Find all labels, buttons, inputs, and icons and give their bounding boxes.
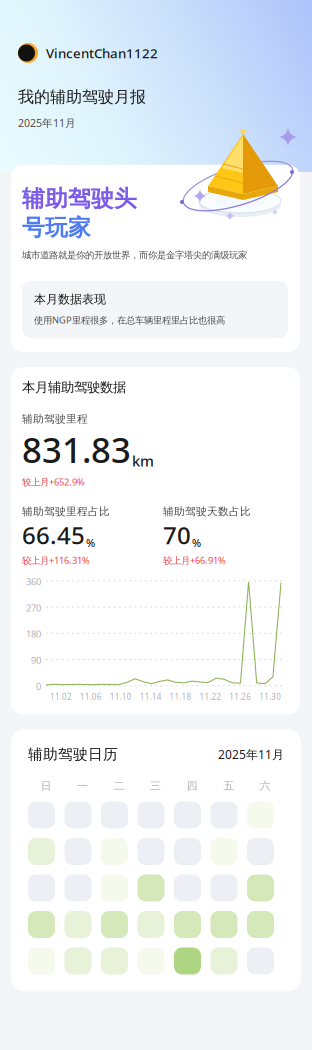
staticText: 较上月+116.31% bbox=[22, 554, 90, 566]
staticText: 辅助驾驶里程 bbox=[22, 412, 88, 426]
staticText: 66.45 bbox=[22, 519, 85, 551]
staticText: 较上月+652.9% bbox=[22, 476, 85, 488]
staticText: 2025年11月 bbox=[18, 116, 76, 130]
staticText: 11.30 bbox=[259, 691, 281, 702]
staticText: 360 bbox=[26, 575, 41, 588]
staticText: 270 bbox=[26, 602, 41, 614]
staticText: 本月辅助驾驶数据 bbox=[22, 379, 126, 395]
staticText: 城市道路就是你的开放世界，而你是金字塔尖的满级玩家 bbox=[22, 249, 247, 261]
staticText: 较上月+66.91% bbox=[163, 554, 226, 566]
staticText: % bbox=[192, 536, 201, 550]
staticText: VincentChan1122 bbox=[46, 44, 158, 62]
staticText: 辅助驾驶里程占比 bbox=[22, 505, 110, 518]
staticText: 90 bbox=[31, 654, 41, 666]
staticText: 二 bbox=[114, 779, 125, 792]
staticText: 本月数据表现 bbox=[34, 292, 106, 307]
staticText: 11.26 bbox=[229, 691, 251, 702]
staticText: 六 bbox=[260, 779, 271, 792]
staticText: 日 bbox=[41, 779, 52, 792]
staticText: 号玩家 bbox=[22, 214, 91, 241]
staticText: 11.22 bbox=[199, 691, 221, 702]
staticText: % bbox=[86, 536, 95, 550]
staticText: 三 bbox=[150, 779, 161, 792]
staticText: 四 bbox=[187, 779, 198, 792]
staticText: 11.18 bbox=[169, 691, 191, 702]
staticText: 使用NGP里程很多，在总车辆里程里占比也很高 bbox=[34, 314, 225, 326]
staticText: 五 bbox=[223, 779, 234, 792]
staticText: 70 bbox=[163, 519, 191, 551]
staticText: 11.10 bbox=[110, 691, 132, 702]
staticText: 180 bbox=[26, 628, 41, 640]
staticText: km bbox=[132, 451, 154, 471]
staticText: 0 bbox=[36, 680, 41, 693]
staticText: 2025年11月 bbox=[218, 746, 284, 762]
staticText: 一 bbox=[77, 779, 88, 792]
staticText: 11.14 bbox=[140, 691, 162, 702]
staticText: 我的辅助驾驶月报 bbox=[18, 87, 146, 107]
staticText: 辅助驾驶天数占比 bbox=[163, 505, 251, 518]
staticText: 831.83 bbox=[22, 427, 131, 473]
staticText: 11.06 bbox=[80, 691, 102, 702]
staticText: 辅助驾驶日历 bbox=[28, 745, 118, 763]
staticText: 辅助驾驶头 bbox=[22, 185, 137, 213]
staticText: 11.02 bbox=[50, 691, 72, 702]
